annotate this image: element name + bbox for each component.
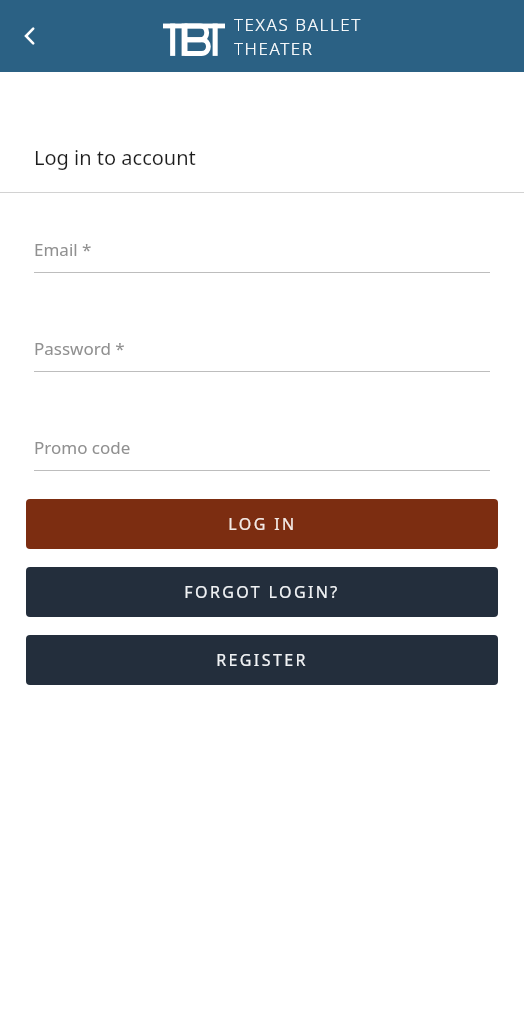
button[interactable]: Email *	[0, 238, 524, 273]
staticText: TEXAS BALLET	[234, 13, 362, 36]
button[interactable]: Password *	[0, 337, 524, 372]
staticText: THEATER	[234, 37, 314, 60]
button[interactable]: REGISTER	[26, 635, 498, 685]
staticText: LOG IN	[228, 513, 297, 535]
button[interactable]: Back	[6, 12, 54, 60]
button[interactable]: LOG IN	[26, 499, 498, 549]
button[interactable]: FORGOT LOGIN?	[26, 567, 498, 617]
staticText: Password *	[34, 337, 125, 360]
staticText: Promo code	[34, 436, 131, 459]
staticText: Log in to account	[34, 144, 196, 171]
staticText: FORGOT LOGIN?	[184, 581, 340, 603]
staticText: REGISTER	[216, 649, 308, 671]
button[interactable]: Promo code	[0, 436, 524, 471]
staticText: Email *	[34, 238, 92, 261]
